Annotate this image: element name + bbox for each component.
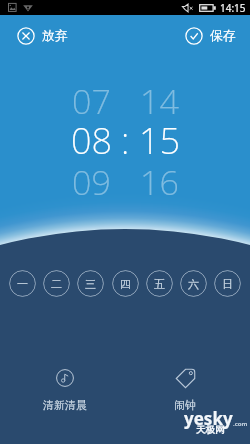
button[interactable]: 07 — [68, 78, 115, 124]
button[interactable]: 四 — [112, 270, 139, 297]
button[interactable]: 六 — [180, 270, 207, 297]
button[interactable]: 日 — [214, 270, 241, 297]
button[interactable]: 08 — [68, 116, 115, 165]
button[interactable]: 一 — [9, 270, 36, 297]
button[interactable]: 保存 — [171, 19, 250, 53]
staticText: 天极网 — [196, 424, 225, 436]
staticText: 三 — [85, 277, 96, 291]
button[interactable]: 15 — [136, 116, 183, 165]
staticText: 放弃 — [42, 28, 68, 44]
staticText: 六 — [188, 277, 199, 291]
staticText: 16 — [140, 159, 179, 205]
button[interactable]: 09 — [68, 159, 115, 205]
staticText: 清新清晨 — [43, 398, 87, 412]
button[interactable]: 放弃 — [0, 19, 82, 53]
staticText: 一 — [17, 277, 28, 291]
button[interactable]: 16 — [136, 159, 183, 205]
staticText: .com — [233, 420, 248, 428]
staticText: 保存 — [210, 28, 236, 44]
button[interactable]: 五 — [146, 270, 173, 297]
staticText: 四 — [120, 277, 131, 291]
staticText: 二 — [51, 277, 62, 291]
button[interactable]: 闹钟 — [162, 366, 208, 414]
button[interactable]: 14 — [136, 78, 183, 124]
staticText: yesky — [184, 407, 233, 430]
staticText: 14:15 — [220, 1, 246, 15]
staticText: 日 — [222, 277, 233, 291]
staticText: 09 — [72, 159, 111, 205]
staticText: 14 — [140, 78, 179, 124]
staticText: 闹钟 — [174, 398, 196, 412]
staticText: 08 — [71, 116, 113, 165]
staticText: : — [121, 116, 130, 165]
staticText: 五 — [154, 277, 165, 291]
staticText: 15 — [139, 116, 181, 165]
button[interactable]: 清新清晨 — [37, 367, 93, 414]
staticText: 07 — [72, 78, 111, 124]
button[interactable]: 二 — [43, 270, 70, 297]
button[interactable]: 三 — [77, 270, 104, 297]
